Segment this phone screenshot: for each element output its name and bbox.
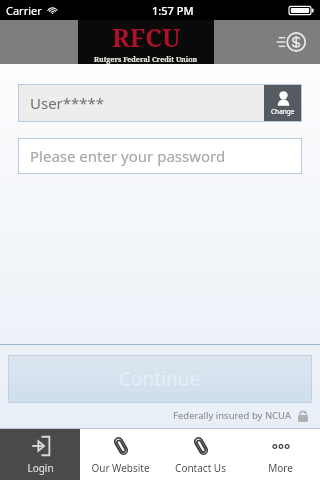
button[interactable]: User***** [18, 84, 302, 122]
staticText: Rutgers Federal Credit Union [94, 55, 198, 64]
button[interactable]: Please enter your password [18, 138, 302, 174]
staticText: Carrier [6, 3, 42, 18]
button[interactable]: More [240, 429, 320, 480]
button[interactable]: Login [0, 429, 80, 480]
staticText: Federally insured by NCUA [173, 409, 292, 422]
button[interactable]: Change user [264, 84, 302, 122]
staticText: Change [271, 107, 295, 116]
staticText: Contact Us [175, 461, 226, 475]
staticText: More [268, 461, 293, 475]
staticText: Our Website [91, 461, 150, 475]
button[interactable]: Continue [8, 355, 312, 403]
button[interactable]: Our Website [80, 429, 160, 480]
staticText: Continue [119, 366, 201, 392]
button[interactable]: Contact Us [160, 429, 240, 480]
staticText: RFCU [112, 20, 181, 54]
staticText: 1:57 PM [152, 3, 194, 18]
staticText: User***** [30, 93, 105, 113]
staticText: Login [27, 461, 54, 475]
staticText: Please enter your password [30, 146, 226, 166]
button[interactable]: Rates [274, 24, 310, 60]
